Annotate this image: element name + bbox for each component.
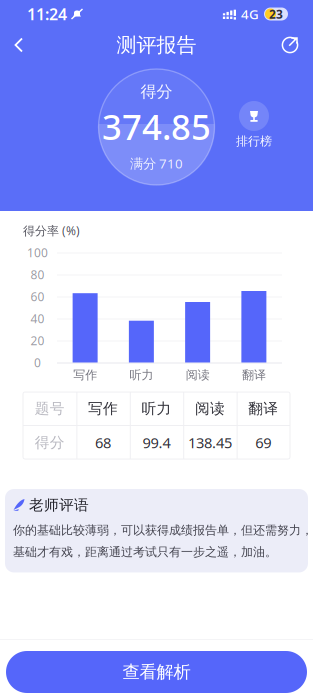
button[interactable]: 排行榜 (236, 101, 272, 149)
staticText: 阅读 (195, 399, 225, 417)
staticText: 翻译 (242, 368, 266, 382)
staticText: 基础才有戏，距离通过考试只有一步之遥，加油。 (13, 545, 277, 559)
staticText: 题号 (35, 399, 65, 417)
staticText: 11:24 (27, 3, 67, 25)
staticText: 40 (30, 310, 44, 326)
staticText: 得分 (140, 82, 172, 101)
staticText: 20 (30, 332, 44, 348)
button[interactable]: Back (4, 28, 34, 61)
staticText: 23 (269, 6, 283, 22)
staticText: 听力 (129, 368, 153, 382)
staticText: 60 (30, 288, 44, 304)
staticText: 听力 (141, 399, 171, 417)
staticText: 100 (27, 244, 48, 260)
staticText: 翻译 (248, 399, 278, 417)
staticText: 阅读 (186, 368, 210, 382)
staticText: 138.45 (188, 433, 232, 452)
staticText: 68 (95, 433, 111, 452)
button[interactable]: Share (273, 29, 308, 60)
staticText: 69 (255, 433, 271, 452)
staticText: 得分 (35, 433, 65, 451)
button[interactable]: 查看解析 (6, 651, 307, 693)
staticText: 0 (34, 354, 41, 370)
staticText: 374.85 (102, 103, 211, 149)
staticText: 老师评语 (29, 496, 89, 514)
staticText: 得分率 (%) (23, 222, 80, 238)
staticText: 查看解析 (122, 661, 190, 683)
staticText: 排行榜 (236, 134, 272, 149)
staticText: 写作 (88, 399, 118, 417)
staticText: 4G (241, 5, 259, 23)
staticText: 你的基础比较薄弱，可以获得成绩报告单，但还需努力，扎实 (13, 523, 313, 538)
staticText: 测评报告 (116, 33, 196, 57)
staticText: 99.4 (142, 433, 170, 452)
staticText: 写作 (73, 368, 97, 382)
staticText: 满分 710 (130, 154, 183, 172)
staticText: 80 (30, 266, 44, 282)
